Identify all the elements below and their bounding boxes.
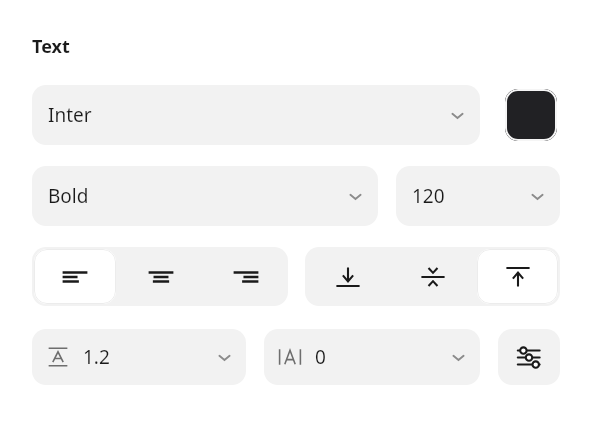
- button[interactable]: Align bottom: [307, 249, 388, 304]
- button[interactable]: 120: [396, 166, 560, 226]
- staticText: 1.2: [83, 344, 110, 370]
- button[interactable]: Align middle: [392, 249, 473, 304]
- staticText: 120: [412, 183, 445, 209]
- button[interactable]: Align top: [477, 249, 558, 304]
- button[interactable]: Type settings: [498, 329, 560, 385]
- staticText: Bold: [48, 183, 89, 209]
- button[interactable]: 1.2: [32, 329, 246, 385]
- button[interactable]: Align right: [205, 249, 286, 304]
- button[interactable]: 0: [264, 329, 480, 385]
- staticText: Text: [32, 34, 70, 59]
- button[interactable]: Align center: [120, 249, 201, 304]
- button[interactable]: Text colour: [505, 89, 557, 141]
- staticText: 0: [315, 344, 326, 370]
- staticText: Inter: [48, 102, 92, 128]
- button[interactable]: Inter: [32, 85, 480, 145]
- button[interactable]: Align left: [34, 249, 116, 304]
- button[interactable]: Bold: [32, 166, 378, 226]
